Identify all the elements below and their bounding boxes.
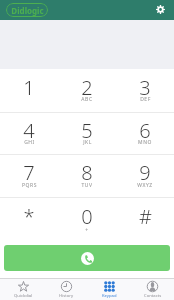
staticText: MNO xyxy=(138,139,152,146)
button[interactable]: Settings xyxy=(156,5,165,14)
staticText: # xyxy=(139,203,152,230)
staticText: 2 xyxy=(81,74,93,101)
staticText: Didlogic xyxy=(11,5,44,16)
staticText: PQRS xyxy=(22,182,37,189)
button[interactable]: # xyxy=(116,198,174,240)
button[interactable]: History xyxy=(45,279,88,300)
staticText: 1 xyxy=(23,74,35,101)
staticText: 7 xyxy=(23,159,35,186)
staticText: Quickdial xyxy=(14,293,33,299)
staticText: WXYZ xyxy=(137,182,153,189)
staticText: 8 xyxy=(81,159,93,186)
staticText: 6 xyxy=(139,117,151,144)
staticText: 5 xyxy=(81,117,93,144)
button[interactable]: 7 xyxy=(0,155,58,198)
staticText: DEF xyxy=(140,96,151,103)
staticText: + xyxy=(85,227,89,234)
button[interactable]: 4 xyxy=(0,112,58,155)
button[interactable]: 9 xyxy=(116,155,174,198)
staticText: 4 xyxy=(23,117,35,144)
button[interactable]: 2 xyxy=(58,69,116,112)
button[interactable]: 6 xyxy=(116,112,174,155)
button[interactable]: 5 xyxy=(58,112,116,155)
button[interactable]: Keypad xyxy=(88,279,131,300)
button[interactable]: * xyxy=(0,198,58,240)
button[interactable]: Contacts xyxy=(131,279,174,300)
staticText: 9 xyxy=(139,159,151,186)
button[interactable]: 0 xyxy=(58,198,116,240)
button[interactable]: Didlogic xyxy=(6,3,48,17)
staticText: 3 xyxy=(139,74,151,101)
button[interactable]: 8 xyxy=(58,155,116,198)
button[interactable]: 1 xyxy=(0,69,58,112)
staticText: Contacts xyxy=(144,293,162,299)
button[interactable]: Call xyxy=(4,245,170,271)
staticText: ABC xyxy=(81,96,93,103)
button[interactable]: Quickdial xyxy=(2,279,45,300)
staticText: History xyxy=(59,293,74,299)
staticText: JKL xyxy=(83,139,92,146)
staticText: TUV xyxy=(81,182,93,189)
staticText: 0 xyxy=(81,203,93,230)
staticText: * xyxy=(23,203,35,230)
button[interactable]: 3 xyxy=(116,69,174,112)
staticText: GHI xyxy=(24,139,35,146)
staticText: Keypad xyxy=(102,293,117,299)
